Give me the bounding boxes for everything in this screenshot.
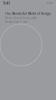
staticText: Notes from a long walk <box>5 16 36 20</box>
staticText: Read time 5 min <box>5 20 28 24</box>
staticText: The Wonderful World of Design <box>5 12 51 15</box>
staticText: ••• <box>47 0 53 6</box>
staticText: 9:41 <box>3 0 10 6</box>
